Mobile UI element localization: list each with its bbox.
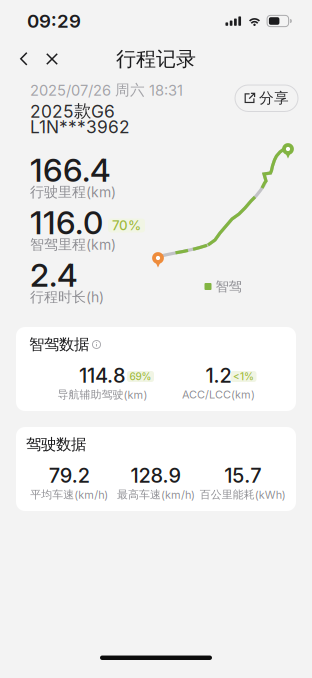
staticText: 166.4 [30,151,111,189]
button[interactable]: 返回 [10,44,38,74]
button[interactable]: 分享 [235,85,298,111]
staticText: 最高车速(km/h) [117,488,195,501]
staticText: <1% [233,370,254,383]
staticText: 15.7 [224,463,261,488]
staticText: 79.2 [49,463,90,488]
staticText: 平均车速(km/h) [30,488,108,501]
staticText: L1N***3962 [30,116,130,137]
staticText: 116.0 [30,203,103,242]
staticText: 智驾里程(km) [30,236,116,253]
staticText: 导航辅助驾驶(km) [57,388,147,401]
staticText: 驾驶数据 [26,435,86,454]
staticText: ACC/LCC(km) [182,388,255,401]
staticText: 2.4 [30,256,78,294]
staticText: 2025/07/26 周六 18:31 [30,81,183,99]
staticText: 09:29 [27,10,81,32]
staticText: 行程记录 [116,46,196,72]
staticText: 行驶里程(km) [30,183,116,201]
staticText: 分享 [259,89,289,107]
staticText: 智驾 [215,278,241,295]
staticText: 行程时长(h) [30,288,104,306]
staticText: 69% [129,370,151,383]
staticText: 智驾数据 [29,335,89,354]
button[interactable]: 关闭 [38,44,66,74]
staticText: 2025款G6 [30,100,115,122]
staticText: 128.9 [130,463,181,488]
staticText: 114.8 [79,363,126,388]
staticText: 百公里能耗(kWh) [200,488,286,501]
staticText: 70% [112,217,141,233]
staticText: 1.2 [205,363,231,388]
